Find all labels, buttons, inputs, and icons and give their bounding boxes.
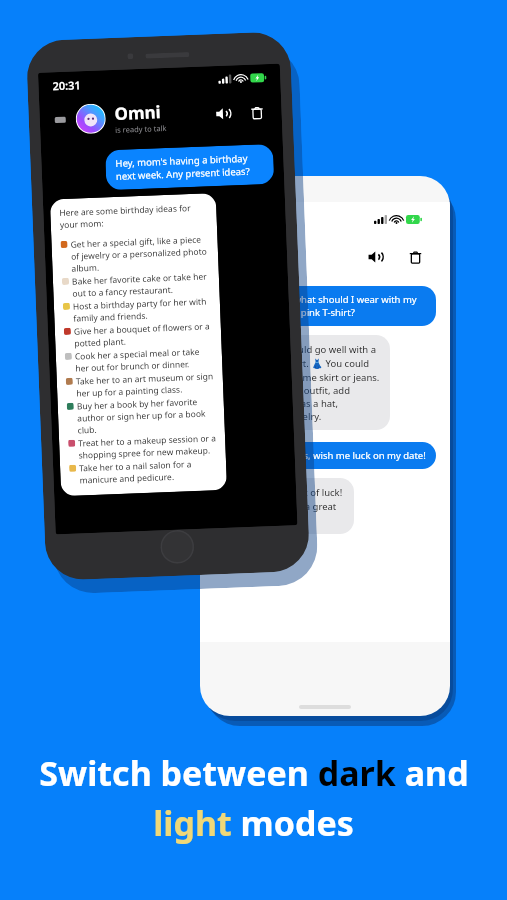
button[interactable]: Omni avatar xyxy=(76,104,105,133)
staticText: Host a birthday party for her with famil… xyxy=(73,295,211,325)
staticText: Take her to an art museum or sign her up… xyxy=(76,370,214,400)
staticText: light modes xyxy=(153,800,354,846)
button[interactable]: Speaker xyxy=(209,100,236,127)
button[interactable]: Thanks, wish me luck on my date! xyxy=(266,442,436,469)
staticText: Get her a special gift, like a piece of … xyxy=(70,233,210,275)
button[interactable]: Speaker xyxy=(362,244,388,270)
staticText: Omni xyxy=(214,241,261,264)
button[interactable]: Here are some birthday ideas for your mo… xyxy=(50,193,227,496)
staticText: Omni, what should I wear with my favorit… xyxy=(264,293,426,319)
staticText: Treat her to a makeup session or a shopp… xyxy=(78,432,217,462)
button[interactable]: Delete conversation xyxy=(243,99,270,126)
button[interactable]: Hey, mom's having a birthday next week. … xyxy=(105,144,274,190)
staticText: I wish you the best of luck! I hope you'… xyxy=(224,486,344,526)
staticText: A pink T-shirt would go well with a mono… xyxy=(224,343,380,422)
staticText: Take her to a nail salon for a manicure … xyxy=(79,457,218,486)
staticText: Omni xyxy=(114,100,162,125)
staticText: Cook her a special meal or take her out … xyxy=(75,345,213,375)
staticText: is ready to talk xyxy=(214,264,266,274)
staticText: Hey, mom's having a birthday next week. … xyxy=(115,151,264,183)
staticText: 20:31 xyxy=(52,77,82,93)
button[interactable]: I wish you the best of luck! I hope you'… xyxy=(214,478,354,534)
button[interactable]: Omni, what should I wear with my favorit… xyxy=(254,286,436,326)
button[interactable]: Menu xyxy=(47,108,72,132)
button[interactable]: Delete conversation xyxy=(402,244,428,270)
staticText: Bake her favorite cake or take her out t… xyxy=(72,270,211,300)
staticText: is ready to talk xyxy=(115,123,167,135)
staticText: Give her a bouquet of flowers or a potte… xyxy=(74,320,212,350)
button[interactable]: A pink T-shirt would go well with a mono… xyxy=(214,335,390,430)
staticText: Here are some birthday ideas for your mo… xyxy=(59,201,208,231)
staticText: Thanks, wish me luck on my date! xyxy=(276,449,426,462)
staticText: Buy her a book by her favorite author or… xyxy=(77,395,216,437)
staticText: Switch between dark and xyxy=(39,750,469,796)
